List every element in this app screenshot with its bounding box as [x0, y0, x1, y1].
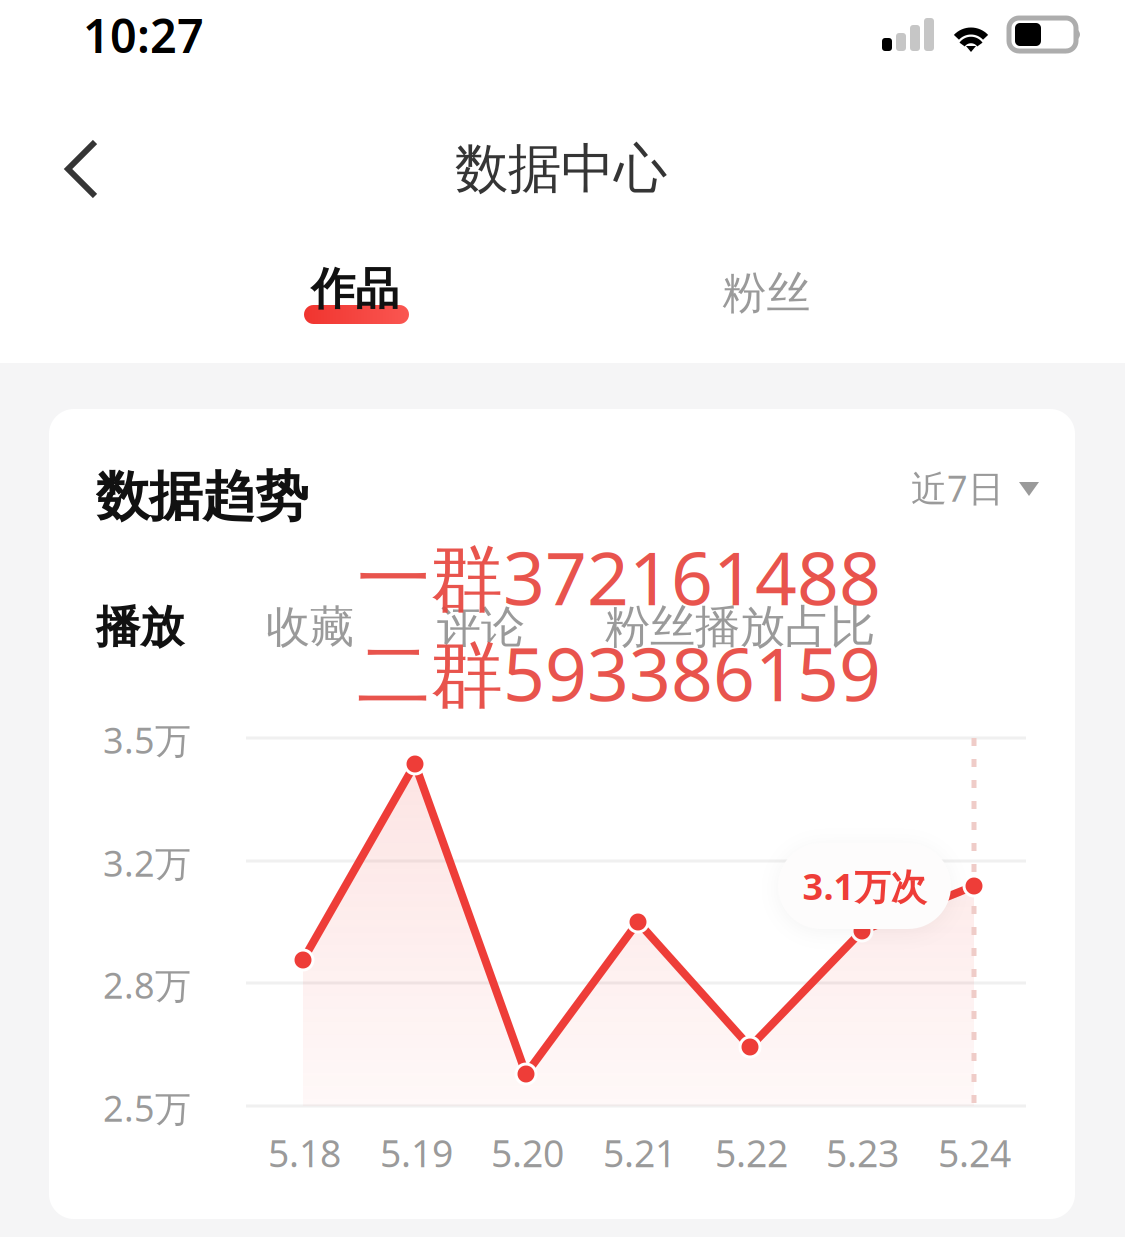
button[interactable]: 粉丝播放占比: [605, 597, 885, 657]
staticText: 二群593386159: [357, 624, 881, 721]
staticText: 作品: [311, 262, 399, 316]
staticText: 2.8万: [103, 961, 191, 1009]
staticText: 5.18: [268, 1128, 341, 1178]
staticText: 3.2万: [103, 839, 191, 887]
button[interactable]: 收藏: [266, 597, 366, 657]
button[interactable]: 播放: [96, 597, 196, 657]
staticText: 3.1万次: [802, 862, 926, 910]
button[interactable]: 近7日: [911, 458, 1041, 508]
staticText: 5.20: [491, 1128, 564, 1178]
button[interactable]: Back: [34, 117, 138, 221]
staticText: 5.24: [938, 1128, 1011, 1178]
staticText: 10:27: [83, 4, 204, 66]
staticText: 5.22: [715, 1128, 788, 1178]
staticText: 评论: [437, 600, 525, 654]
staticText: 5.19: [380, 1128, 453, 1178]
staticText: 粉丝播放占比: [605, 599, 875, 655]
staticText: 近7日: [911, 464, 1004, 512]
button[interactable]: 粉丝: [713, 251, 820, 335]
staticText: 3.5万: [103, 716, 191, 764]
staticText: 5.23: [826, 1128, 899, 1178]
staticText: 数据中心: [455, 136, 667, 202]
staticText: 收藏: [266, 600, 354, 654]
staticText: 2.5万: [103, 1084, 191, 1132]
staticText: 数据趋势: [96, 464, 308, 529]
staticText: 播放: [96, 600, 184, 654]
staticText: 一群372161488: [357, 528, 881, 625]
button[interactable]: 评论: [437, 597, 537, 657]
button[interactable]: 作品: [303, 251, 410, 335]
staticText: 粉丝: [722, 266, 810, 320]
staticText: 5.21: [603, 1128, 676, 1178]
